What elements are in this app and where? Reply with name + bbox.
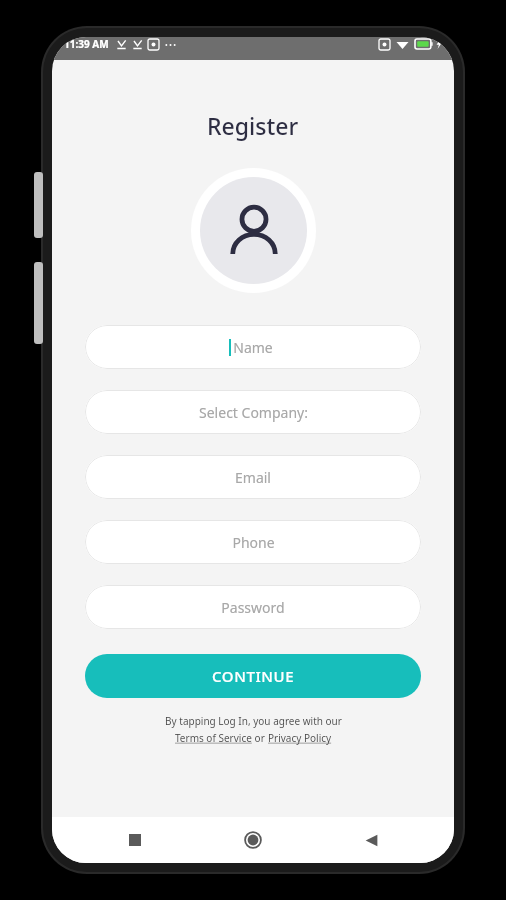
button[interactable]: Back	[348, 817, 394, 863]
staticText: By tapping Log In, you agree with our	[165, 714, 342, 728]
button[interactable]: Terms of Service	[175, 731, 252, 745]
button[interactable]: Profile photo	[200, 177, 307, 284]
staticText: Register	[207, 110, 299, 141]
button[interactable]: Home	[230, 817, 276, 863]
staticText: Name	[233, 338, 273, 357]
staticText: Select Company:	[199, 403, 308, 422]
button[interactable]: Select Company:	[85, 390, 421, 434]
staticText: or	[252, 731, 268, 745]
button[interactable]: CONTINUE	[85, 654, 421, 698]
button[interactable]: Recent apps	[112, 817, 158, 863]
button[interactable]: Phone	[85, 520, 421, 564]
staticText: Email	[235, 468, 271, 487]
button[interactable]: Password	[85, 585, 421, 629]
staticText: Privacy Policy	[268, 731, 332, 745]
staticText: Terms of Service	[175, 731, 252, 745]
staticText: Password	[221, 598, 285, 617]
staticText: CONTINUE	[212, 666, 295, 686]
staticText: 11:39 AM	[64, 37, 109, 51]
staticText: Phone	[232, 533, 275, 552]
button[interactable]: Name	[85, 325, 421, 369]
button[interactable]: Privacy Policy	[268, 731, 332, 745]
button[interactable]: Email	[85, 455, 421, 499]
